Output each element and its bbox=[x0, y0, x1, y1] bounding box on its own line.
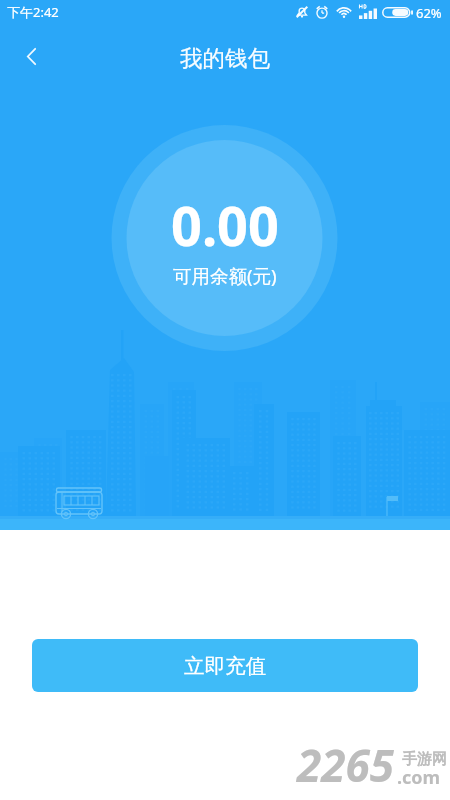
staticText: 手游网 bbox=[402, 750, 447, 769]
staticText: 可用余额(元) bbox=[173, 263, 277, 288]
button[interactable]: 立即充值 bbox=[32, 639, 418, 692]
staticText: 下午2:42 bbox=[7, 3, 59, 21]
staticText: 0.00 bbox=[171, 188, 279, 262]
staticText: 我的钱包 bbox=[180, 44, 270, 72]
staticText: 立即充值 bbox=[184, 653, 266, 679]
staticText: 2265 bbox=[297, 735, 394, 795]
staticText: 62% bbox=[416, 4, 442, 22]
button[interactable]: Back bbox=[7, 32, 55, 80]
staticText: .com bbox=[397, 765, 441, 790]
